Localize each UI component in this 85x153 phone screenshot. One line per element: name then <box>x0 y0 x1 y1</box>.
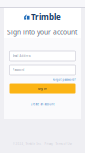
staticText: © 2024, Trimble Inc. Privacy Terms of Us… <box>12 142 72 146</box>
staticText: Email Address <box>12 54 30 58</box>
staticText: Forgot password? <box>52 78 75 81</box>
staticText: Trimble <box>31 12 61 22</box>
staticText: Create an account <box>30 102 54 106</box>
button[interactable]: Forgot password? <box>52 78 75 81</box>
staticText: Log In <box>38 87 47 90</box>
staticText: Sign into your account <box>7 28 77 36</box>
button[interactable]: Log In <box>9 83 75 93</box>
staticText: Password <box>12 68 24 72</box>
button[interactable]: Create an account <box>30 102 54 106</box>
